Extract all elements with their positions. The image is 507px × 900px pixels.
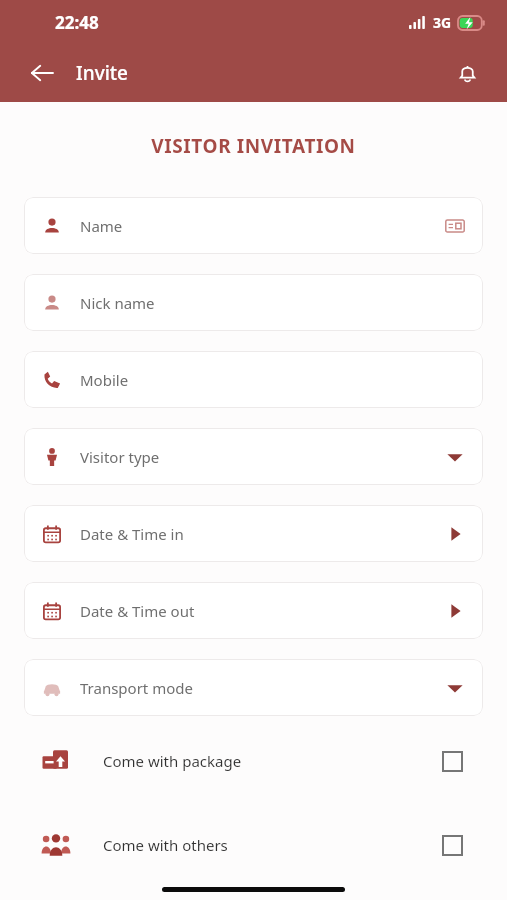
staticText: Name [80,216,123,236]
staticText: Invite [76,60,128,86]
button[interactable]: Visitor type [24,428,483,485]
staticText: 3G [433,13,452,32]
button[interactable]: Mobile [24,351,483,408]
button[interactable]: Name [24,197,483,254]
staticText: Come with package [103,751,242,771]
staticText: 22:48 [55,11,99,34]
staticText: Visitor type [80,447,160,467]
staticText: VISITOR INVITATION [0,133,507,159]
staticText: Transport mode [80,678,193,698]
staticText: Date & Time out [80,601,195,621]
staticText: Come with others [103,835,228,855]
staticText: Date & Time in [80,524,184,544]
staticText: Mobile [80,370,129,390]
button[interactable]: Date & Time in [24,505,483,562]
button[interactable]: Nick name [24,274,483,331]
button[interactable]: Come with others [24,825,483,865]
button[interactable]: Back [22,53,62,93]
button[interactable]: Transport mode [24,659,483,716]
button[interactable]: Come with package [24,741,483,781]
staticText: Nick name [80,293,155,313]
button[interactable]: Notifications [447,53,487,93]
button[interactable]: Date & Time out [24,582,483,639]
